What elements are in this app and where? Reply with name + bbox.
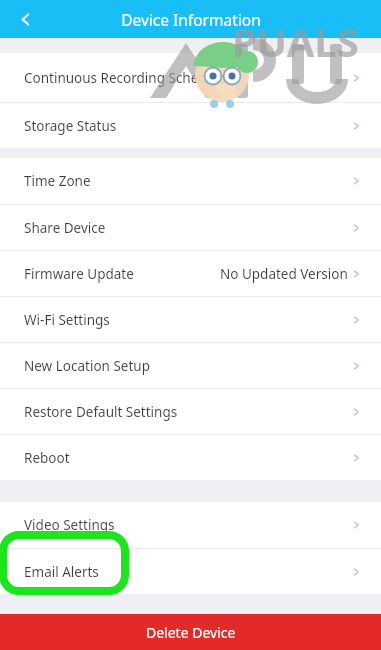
staticText: New Location Setup [24,357,150,375]
button[interactable]: Storage Status [0,103,381,148]
button[interactable]: Video Settings [0,502,381,548]
staticText: Continuous Recording Schedule [24,69,227,87]
staticText: PUALS [232,14,359,68]
staticText: Restore Default Settings [24,403,178,421]
button[interactable]: Restore Default Settings [0,389,381,434]
staticText: No Updated Version [220,265,348,283]
staticText: Device Information [121,9,261,30]
staticText: Share Device [24,219,106,237]
button[interactable]: Time Zone [0,158,381,204]
button[interactable]: Delete Device [0,614,381,650]
staticText: Storage Status [24,117,117,135]
button[interactable]: Email Alerts [0,549,381,594]
button[interactable]: Wi-Fi Settings [0,297,381,342]
staticText: Firmware Update [24,265,134,283]
staticText: Email Alerts [24,563,99,581]
staticText: Time Zone [24,172,91,190]
button[interactable]: Back [10,4,40,34]
staticText: Reboot [24,449,70,467]
staticText: Delete Device [146,623,236,642]
staticText: Wi-Fi Settings [24,311,110,329]
button[interactable]: Continuous Recording Schedule [0,53,381,102]
button[interactable]: New Location Setup [0,343,381,388]
button[interactable]: Share Device [0,205,381,250]
button[interactable]: Reboot [0,435,381,480]
button[interactable]: Firmware Update [0,251,381,296]
staticText: Video Settings [24,516,115,534]
